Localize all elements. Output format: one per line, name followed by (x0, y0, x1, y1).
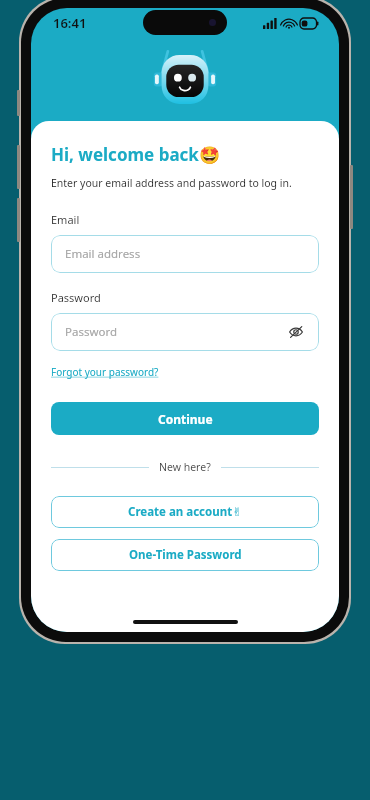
button[interactable]: Password (51, 313, 319, 351)
button[interactable]: Email address (51, 235, 319, 273)
staticText: One-Time Password (129, 547, 242, 563)
staticText: Password (51, 290, 101, 305)
staticText: Email (51, 212, 80, 227)
staticText: Hi, welcome back🤩 (51, 143, 221, 166)
staticText: Forgot your password? (51, 365, 159, 379)
staticText: 16:41 (53, 14, 87, 32)
staticText: Password (65, 324, 118, 340)
button[interactable]: Create an account✌️ (51, 496, 319, 528)
button[interactable]: Forgot your password? (51, 365, 159, 379)
button[interactable]: Show password (287, 323, 305, 341)
staticText: New here? (159, 460, 211, 474)
button[interactable]: One-Time Password (51, 539, 319, 571)
staticText: Email address (65, 246, 141, 262)
staticText: Create an account✌️ (128, 504, 242, 520)
staticText: Enter your email address and password to… (51, 176, 292, 190)
staticText: Continue (158, 411, 213, 427)
button[interactable]: Continue (51, 402, 319, 435)
